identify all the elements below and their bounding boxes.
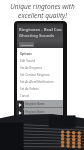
- staticText: Edit Sound: [20, 59, 36, 63]
- button[interactable]: Set As Videos: [17, 85, 63, 92]
- staticText: Set Contact Ringtone: [20, 73, 50, 77]
- button[interactable]: Ringtone Name: [17, 108, 63, 115]
- staticText: Ringtones - Real Cool: [19, 27, 62, 33]
- staticText: Ghosting Sounds: [19, 33, 55, 39]
- button[interactable]: Cancel: [17, 92, 63, 99]
- button[interactable]: Set As Ringtone: [17, 64, 63, 71]
- button[interactable]: Options: [17, 50, 63, 57]
- staticText: Unique ringtones with: [10, 2, 75, 11]
- staticText: Set As Ringtone: [20, 66, 43, 70]
- staticText: Cancel: [20, 94, 30, 98]
- button[interactable]: Play: [16, 101, 24, 109]
- button[interactable]: Play: [16, 109, 24, 117]
- staticText: Download: [21, 43, 33, 46]
- staticText: Options: [20, 52, 32, 56]
- staticText: Ringtone Name: [25, 110, 45, 114]
- button[interactable]: Set As Alert/Notification: [17, 78, 63, 85]
- button[interactable]: Download: [19, 42, 34, 47]
- button[interactable]: Edit Sound: [17, 57, 63, 64]
- staticText: Ringtone Name: [25, 102, 45, 106]
- button[interactable]: Set Contact Ringtone: [17, 71, 63, 78]
- staticText: excellent quality!: [18, 11, 67, 20]
- staticText: Set As Alert/Notification: [20, 80, 54, 84]
- button[interactable]: Ringtone Name: [17, 100, 63, 107]
- staticText: Set As Videos: [20, 87, 39, 91]
